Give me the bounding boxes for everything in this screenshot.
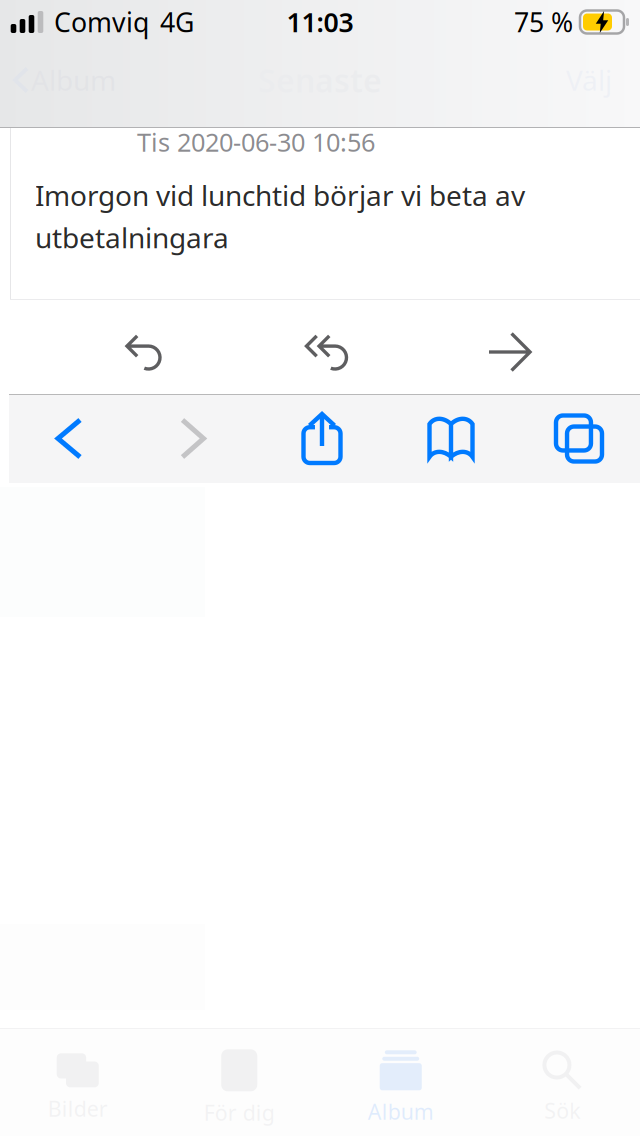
button[interactable]: Album xyxy=(320,1028,481,1136)
staticText: Album xyxy=(368,1097,434,1126)
button[interactable]: För dig xyxy=(158,1028,320,1136)
staticText: Sök xyxy=(544,1096,580,1125)
staticText: 75 % xyxy=(514,4,573,40)
button[interactable]: Tabs xyxy=(515,394,640,483)
button[interactable]: Reply xyxy=(52,305,235,399)
button[interactable]: Bilder xyxy=(0,1028,158,1136)
button[interactable]: Reply All xyxy=(235,305,418,399)
button[interactable]: Forward xyxy=(129,394,257,483)
button[interactable]: Bookmarks xyxy=(387,394,515,483)
staticText: 1 056 bilder, 148 videor xyxy=(176,1043,463,1078)
staticText: 11:03 xyxy=(286,4,353,40)
staticText: utbetalningara xyxy=(35,219,229,256)
button[interactable]: Share xyxy=(257,394,387,483)
staticText: Bilder xyxy=(48,1094,108,1123)
staticText: För dig xyxy=(204,1098,275,1127)
button[interactable]: Back xyxy=(9,394,129,483)
staticText: 4G xyxy=(160,4,194,40)
staticText: Comviq xyxy=(54,4,149,40)
staticText: Imorgon vid lunchtid börjar vi beta av xyxy=(35,177,525,214)
staticText: Tis 2020-06-30 10:56 xyxy=(137,125,375,159)
button[interactable]: Forward xyxy=(418,305,601,399)
